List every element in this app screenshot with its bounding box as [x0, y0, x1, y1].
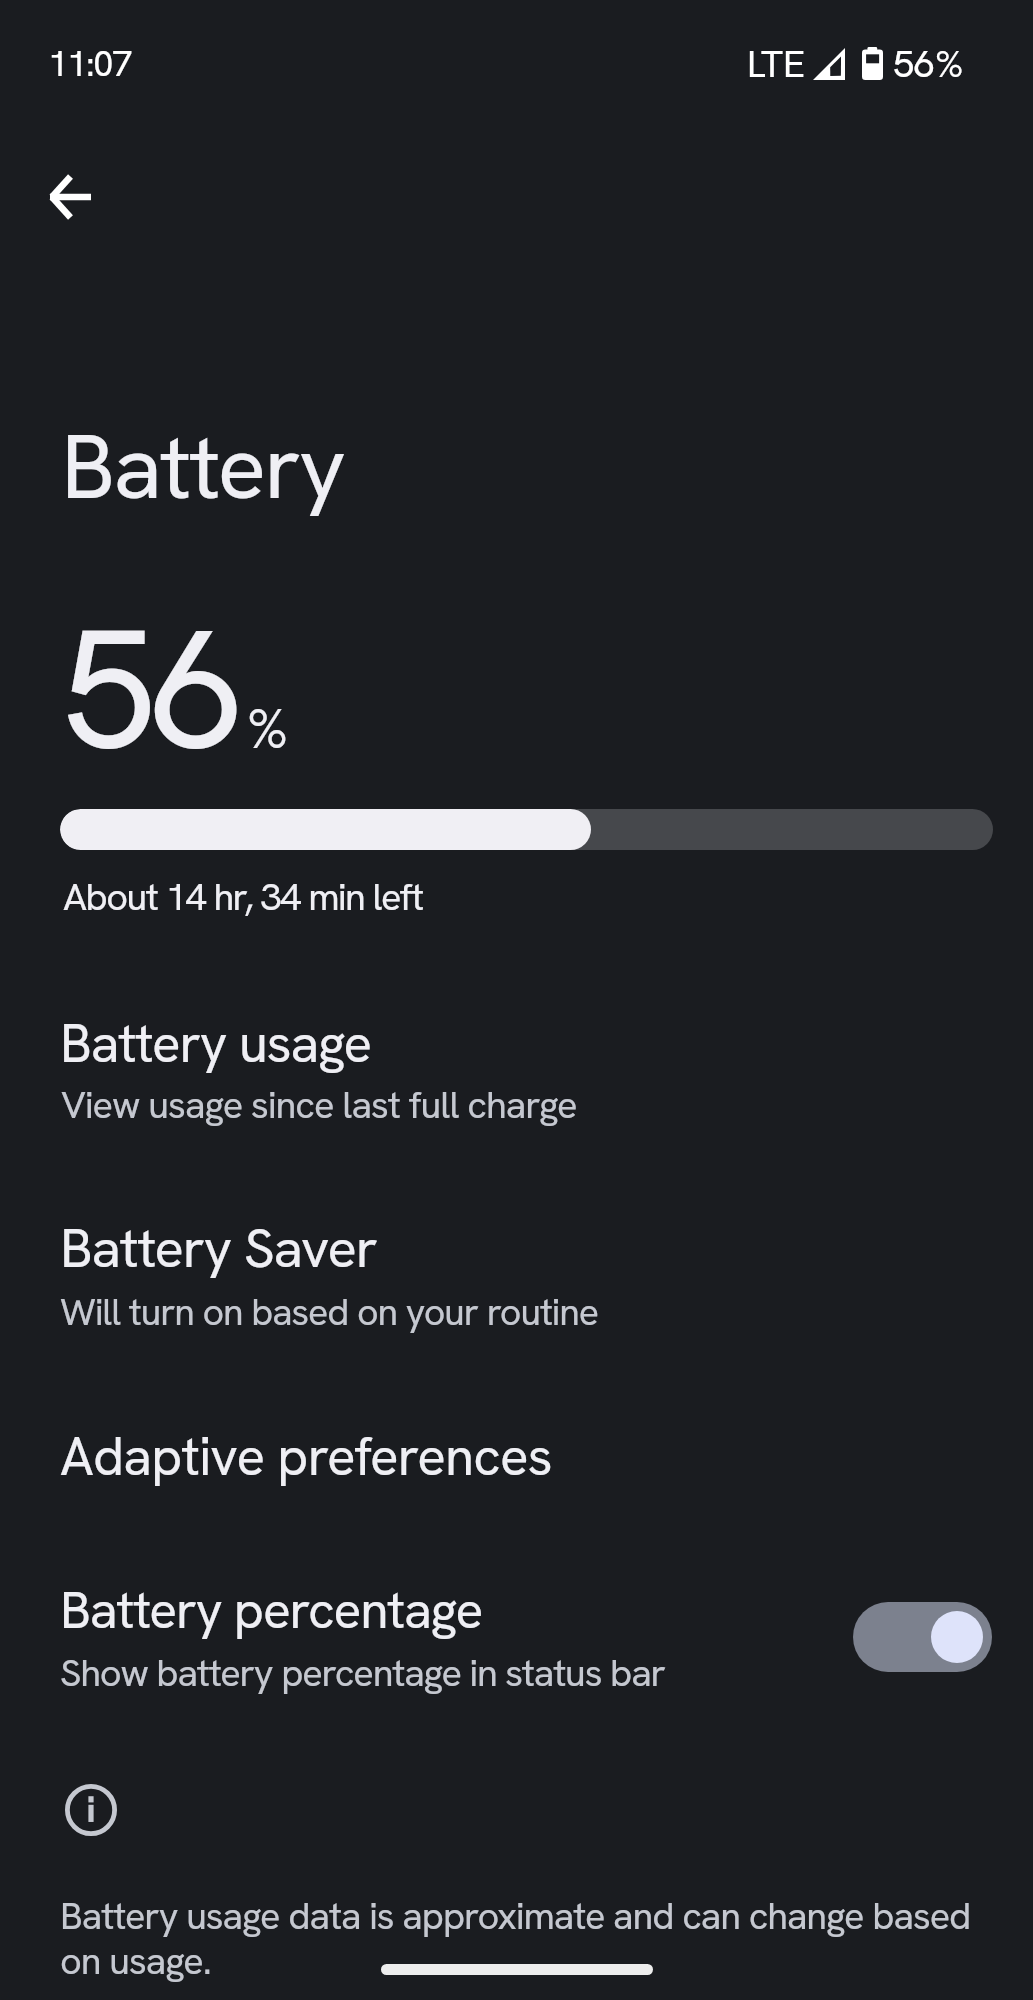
staticText: Show battery percentage in status bar	[60, 1648, 665, 1698]
button[interactable]: Show battery percentage in status bar, o…	[853, 1602, 992, 1672]
staticText: Will turn on based on your routine	[60, 1287, 598, 1336]
staticText: Battery Saver	[60, 1212, 377, 1283]
staticText: LTE	[747, 39, 806, 88]
button[interactable]: Battery percentage	[0, 1556, 1033, 1712]
staticText: %	[247, 693, 289, 765]
staticText: Battery usage data is approximate and ca…	[60, 1891, 990, 1985]
staticText: Battery usage	[60, 1009, 371, 1078]
button[interactable]: Battery Saver	[0, 1196, 1033, 1344]
staticText: Battery percentage	[60, 1576, 483, 1643]
staticText: View usage since last full charge	[61, 1080, 577, 1130]
staticText: 5	[62, 580, 157, 799]
other: Cellular signal	[813, 48, 845, 80]
staticText: 56%	[893, 39, 964, 89]
staticText: 11:07	[48, 40, 132, 87]
staticText: 6	[152, 580, 247, 799]
staticText: Battery	[61, 408, 344, 526]
button[interactable]: Navigate up	[25, 150, 117, 242]
staticText: Adaptive preferences	[60, 1422, 552, 1491]
other: Battery level	[862, 47, 883, 80]
other: Information	[65, 1784, 117, 1836]
staticText: About 14 hr, 34 min left	[63, 872, 423, 921]
button[interactable]: Battery usage	[0, 990, 1033, 1138]
